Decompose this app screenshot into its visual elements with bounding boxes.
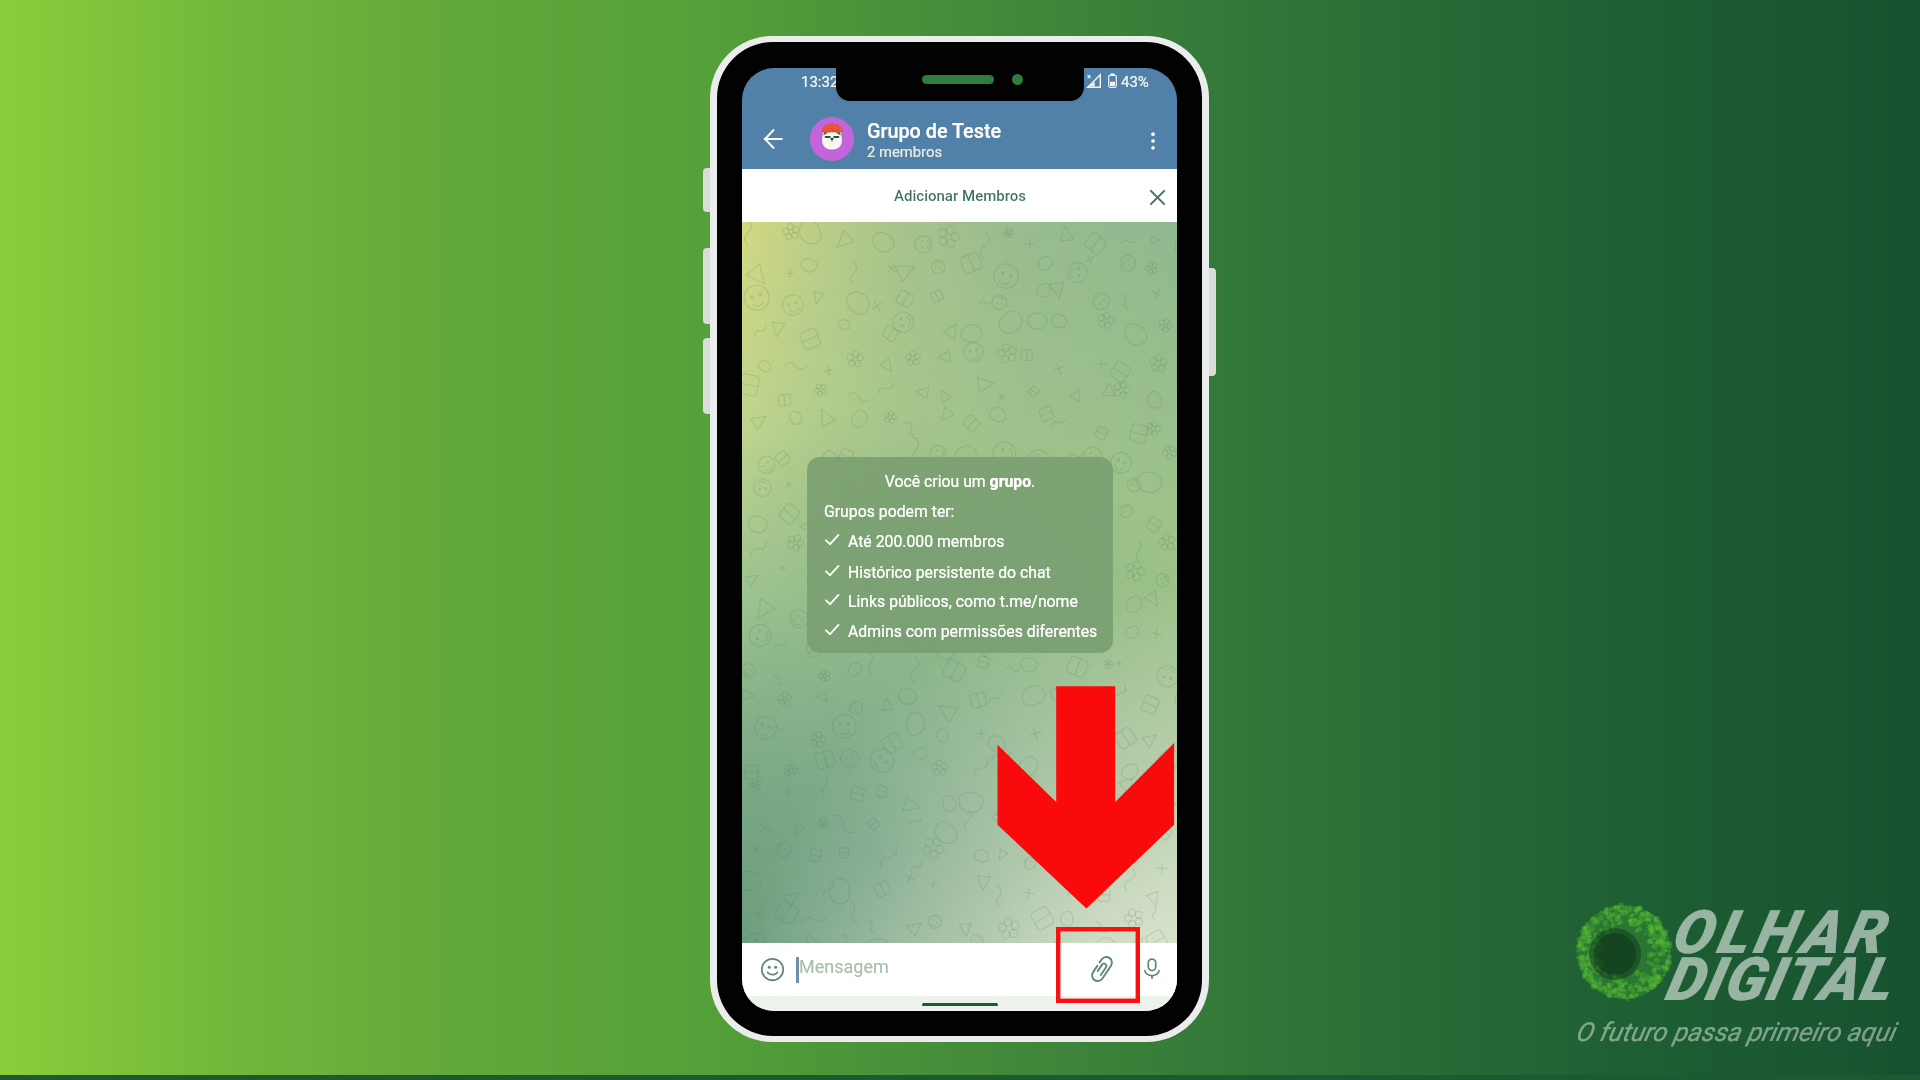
- button[interactable]: Adicionar Membros: [742, 169, 1177, 222]
- staticText: 13:32: [801, 73, 839, 91]
- button[interactable]: Emoji: [749, 946, 795, 992]
- staticText: Grupo de Teste: [867, 120, 1002, 143]
- button[interactable]: Foto do grupo: [810, 117, 854, 161]
- staticText: Mensagem: [799, 956, 889, 977]
- staticText: Grupos podem ter:: [824, 502, 955, 521]
- button[interactable]: Voltar: [751, 117, 795, 161]
- staticText: 43%: [1121, 73, 1149, 91]
- staticText: DIGITAL: [1664, 944, 1892, 1014]
- staticText: O futuro passa primeiro aqui: [1575, 1017, 1895, 1047]
- staticText: Adicionar Membros: [894, 187, 1026, 205]
- staticText: Admins com permissões diferentes: [848, 622, 1098, 641]
- staticText: OLHAR: [1670, 897, 1887, 967]
- button[interactable]: Gravar áudio: [1130, 947, 1174, 991]
- button[interactable]: Anexar arquivo: [1079, 946, 1125, 992]
- staticText: 2 membros: [867, 143, 943, 160]
- staticText: Histórico persistente do chat: [848, 563, 1051, 582]
- staticText: Até 200.000 membros: [848, 532, 1005, 551]
- staticText: Você criou um grupo.: [807, 472, 1113, 491]
- staticText: Links públicos, como t.me/nome: [848, 592, 1078, 611]
- button[interactable]: Mais opções: [1131, 119, 1175, 163]
- button[interactable]: Fechar: [1137, 177, 1177, 217]
